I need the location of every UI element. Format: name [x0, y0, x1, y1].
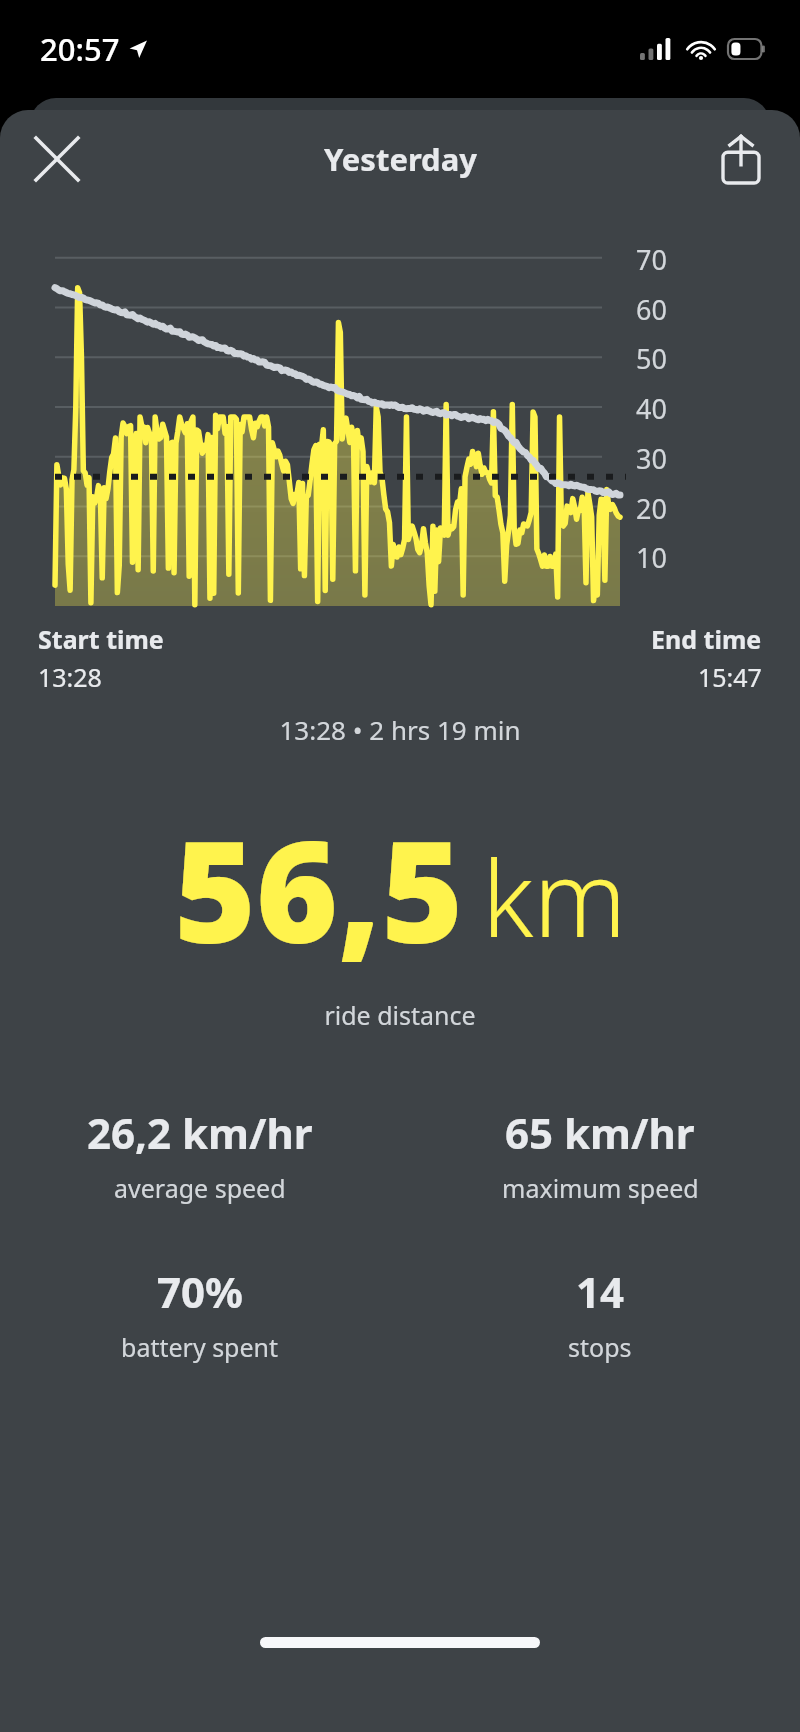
staticText: 14: [576, 1263, 625, 1320]
staticText: stops: [568, 1330, 632, 1364]
staticText: Start time: [38, 622, 164, 656]
button[interactable]: 14: [400, 1263, 800, 1364]
staticText: 60: [636, 291, 667, 328]
staticText: End time: [651, 622, 762, 656]
staticText: 10: [636, 539, 667, 576]
staticText: 26,2 km/hr: [87, 1104, 313, 1161]
staticText: 30: [636, 440, 667, 477]
staticText: 15:47: [698, 660, 762, 694]
staticText: maximum speed: [502, 1171, 699, 1205]
staticText: ride distance: [0, 998, 800, 1032]
staticText: 50: [636, 340, 667, 377]
staticText: 13:28 • 2 hrs 19 min: [0, 712, 800, 747]
staticText: 20: [636, 490, 667, 527]
staticText: 56,5: [174, 793, 464, 984]
staticText: km: [482, 826, 627, 968]
button[interactable]: 26,2 km/hr: [0, 1104, 400, 1205]
staticText: 65 km/hr: [505, 1104, 695, 1161]
staticText: 40: [636, 390, 667, 427]
staticText: average speed: [114, 1171, 286, 1205]
staticText: 13:28: [38, 660, 102, 694]
staticText: 70: [636, 241, 667, 278]
staticText: battery spent: [121, 1330, 279, 1364]
staticText: Yesterday: [324, 138, 477, 180]
button[interactable]: 70%: [0, 1263, 400, 1364]
staticText: 70%: [157, 1263, 243, 1320]
staticText: 20:57: [40, 28, 120, 70]
button[interactable]: Share: [710, 128, 772, 190]
button[interactable]: 65 km/hr: [400, 1104, 800, 1205]
button[interactable]: Close: [26, 128, 88, 190]
